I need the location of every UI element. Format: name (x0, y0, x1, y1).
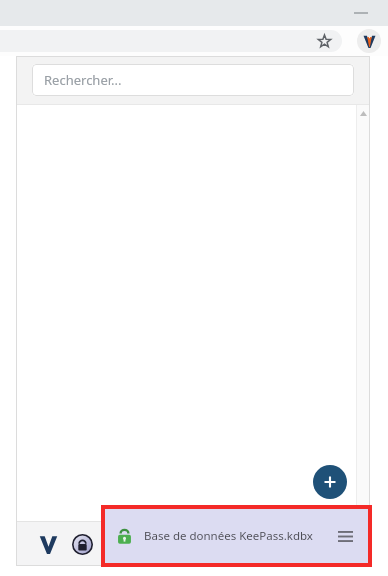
button[interactable]: KeePassXC-Browser extension (357, 29, 381, 53)
button[interactable]: KeePassXC (34, 530, 62, 558)
staticText: Base de données KeePass.kdbx (144, 528, 334, 544)
button[interactable]: Bookmark this page (312, 29, 336, 53)
button[interactable]: Minimize (348, 0, 374, 26)
button[interactable]: Add new entry (313, 465, 347, 499)
button[interactable]: Base de données KeePass.kdbx (105, 509, 368, 563)
button[interactable]: Scroll up (358, 108, 368, 118)
button[interactable]: Rechercher... (32, 64, 354, 96)
button[interactable]: Address bar (0, 30, 342, 52)
staticText: Rechercher... (44, 71, 122, 89)
button[interactable]: Menu (334, 525, 356, 547)
button[interactable]: Lock database (68, 530, 96, 558)
